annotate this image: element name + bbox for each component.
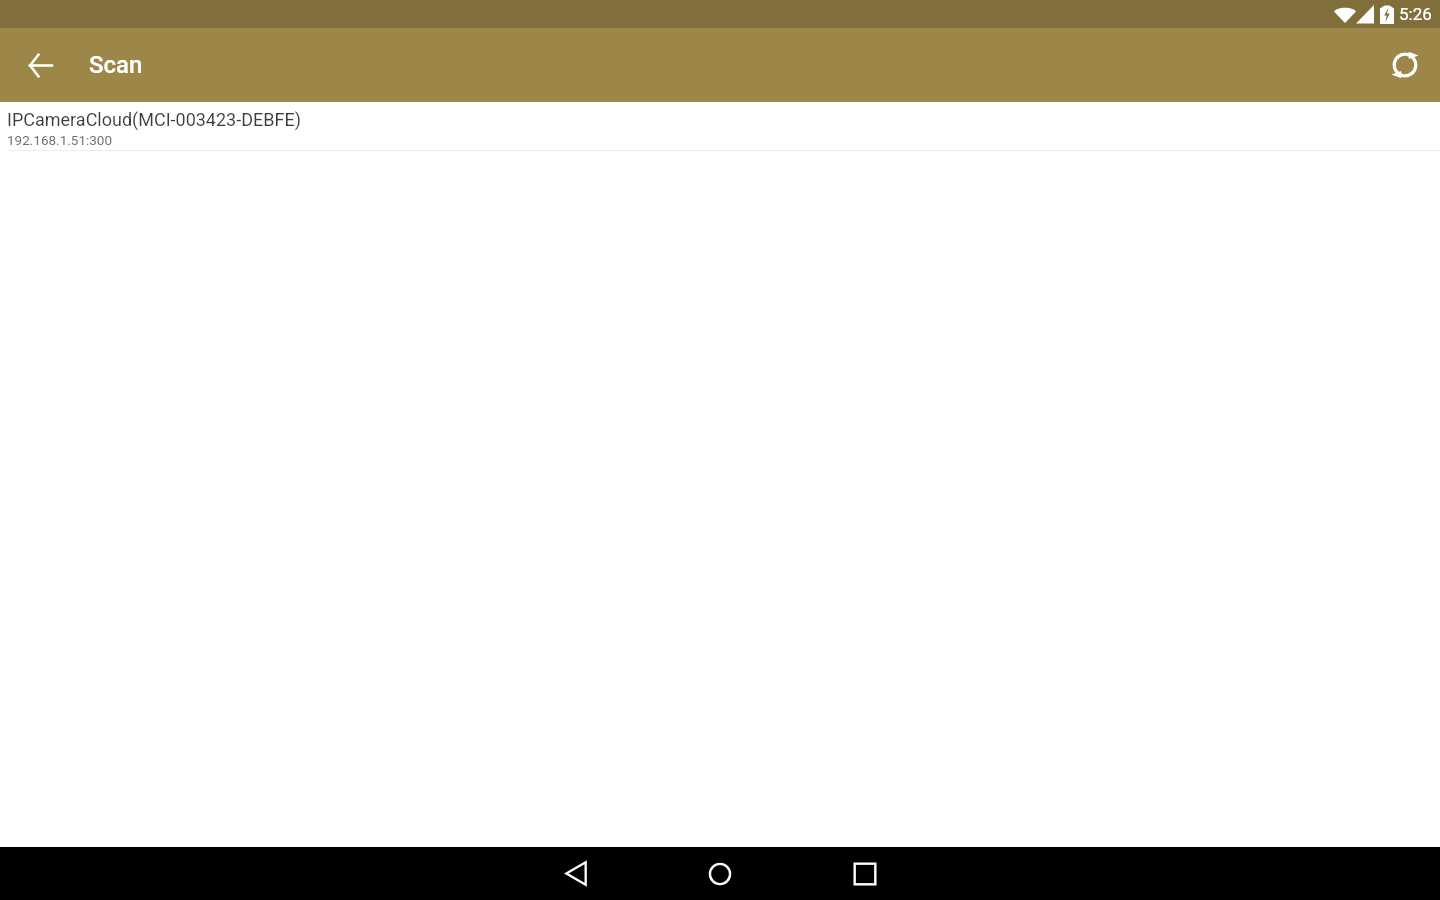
button[interactable]: Back: [504, 847, 648, 900]
other: Battery charging: [1380, 4, 1394, 24]
button[interactable]: Refresh: [1381, 41, 1429, 89]
button[interactable]: IPCameraCloud(MCI-003423-DEBFE): [0, 102, 1440, 151]
other: Wi-Fi signal: [1333, 5, 1357, 23]
button[interactable]: Navigate up: [17, 41, 65, 89]
staticText: Scan: [89, 51, 143, 79]
button[interactable]: Recent apps: [793, 847, 937, 900]
staticText: IPCameraCloud(MCI-003423-DEBFE): [7, 109, 301, 130]
staticText: 192.168.1.51:300: [7, 132, 112, 148]
other: Mobile signal: [1355, 5, 1375, 24]
button[interactable]: Home: [648, 847, 792, 900]
button[interactable]: Scan: [89, 51, 143, 79]
staticText: 5:26: [1399, 4, 1432, 24]
